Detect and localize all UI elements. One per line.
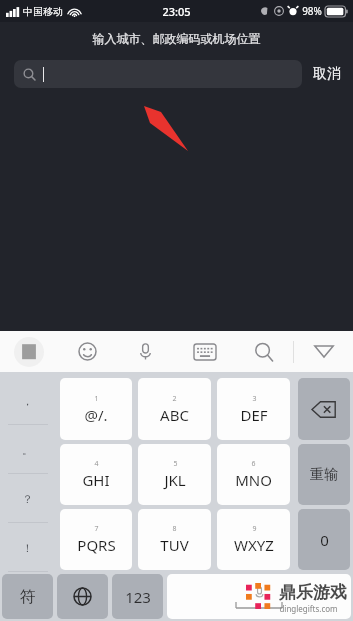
button[interactable]: Switch language — [57, 574, 108, 619]
button[interactable]: 6 — [217, 444, 290, 505]
staticText: 123 — [125, 587, 151, 607]
staticText: 中国移动 — [23, 5, 63, 18]
staticText: DEF — [240, 405, 268, 425]
staticText: 2 — [172, 394, 177, 404]
staticText: GHI — [82, 470, 110, 490]
staticText: 4 — [94, 459, 99, 469]
staticText: 23:05 — [162, 4, 191, 19]
staticText: ！ — [22, 541, 33, 555]
button[interactable]: 9 — [217, 509, 290, 570]
staticText: 重输 — [310, 466, 338, 484]
staticText: 9 — [252, 524, 257, 534]
staticText: TUV — [160, 535, 189, 555]
button[interactable]: 1 — [60, 378, 132, 440]
staticText: @/. — [84, 405, 108, 425]
staticText: 输入城市、邮政编码或机场位置 — [0, 31, 353, 46]
staticText: 98% — [302, 4, 322, 18]
button[interactable]: 8 — [138, 509, 211, 570]
staticText: 0 — [320, 530, 329, 550]
button[interactable]: ， — [0, 376, 55, 425]
staticText: 7 — [94, 524, 99, 534]
button[interactable]: 取消 — [311, 61, 343, 87]
button[interactable]: 符 — [2, 574, 53, 619]
staticText: 1 — [94, 394, 99, 404]
button[interactable]: 3 — [217, 378, 290, 440]
button[interactable]: 2 — [138, 378, 211, 440]
button[interactable]: 5 — [138, 444, 211, 505]
staticText: 取消 — [313, 65, 341, 83]
staticText: ABC — [160, 405, 189, 425]
button[interactable]: Voice input — [116, 331, 175, 372]
staticText: 5 — [173, 459, 178, 469]
button[interactable]: ？ — [0, 474, 55, 523]
button[interactable]: Hide keyboard — [294, 331, 353, 372]
button[interactable]: Emoji — [58, 331, 116, 372]
staticText: JKL — [164, 470, 186, 490]
button[interactable]: 123 — [112, 574, 163, 619]
staticText: MNO — [235, 470, 272, 490]
button[interactable] — [14, 60, 302, 88]
button[interactable] — [167, 574, 351, 619]
button[interactable]: Keyboard settings — [175, 331, 234, 372]
button[interactable]: Delete — [298, 378, 350, 440]
staticText: dinglegifts.com — [279, 603, 338, 614]
button[interactable]: Clipboard — [0, 331, 58, 372]
staticText: ？ — [22, 492, 33, 506]
button[interactable]: 7 — [60, 509, 132, 570]
staticText: 。 — [22, 443, 33, 457]
button[interactable]: 重输 — [298, 444, 350, 505]
button[interactable]: Search — [234, 331, 293, 372]
staticText: 3 — [252, 394, 257, 404]
staticText: PQRS — [77, 535, 116, 555]
staticText: 符 — [20, 587, 36, 607]
staticText: WXYZ — [234, 535, 274, 555]
staticText: 鼎乐游戏 — [279, 582, 347, 603]
staticText: ， — [22, 394, 33, 408]
button[interactable]: ！ — [0, 523, 55, 572]
staticText: 8 — [172, 524, 177, 534]
staticText: 6 — [251, 459, 256, 469]
button[interactable]: 0 — [298, 509, 350, 570]
button[interactable]: 4 — [60, 444, 132, 505]
